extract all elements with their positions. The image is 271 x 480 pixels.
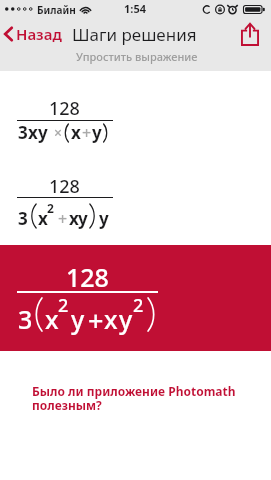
staticText: 2	[133, 293, 144, 318]
staticText: x	[69, 207, 79, 230]
staticText: x	[38, 207, 48, 230]
staticText: 3	[18, 207, 28, 230]
staticText: y	[78, 207, 88, 230]
staticText: 3	[18, 121, 28, 144]
staticText: Упростить выражение	[76, 49, 198, 64]
staticText: ×	[54, 123, 63, 142]
staticText: 2	[58, 293, 69, 318]
staticText: 3	[18, 302, 33, 336]
staticText: Было ли приложение Photomath	[32, 383, 236, 399]
staticText: 1:54	[124, 1, 146, 16]
staticText: +	[88, 302, 104, 339]
staticText: полезным?	[32, 397, 102, 413]
staticText: x	[104, 302, 118, 336]
staticText: Шаги решения	[72, 23, 197, 46]
staticText: Назад	[16, 24, 62, 44]
staticText: 128	[49, 174, 80, 199]
button[interactable]: Share	[236, 20, 264, 48]
button[interactable]: Назад	[3, 20, 62, 48]
staticText: y	[38, 121, 48, 144]
staticText: x	[71, 121, 81, 144]
staticText: 128	[49, 96, 80, 121]
button[interactable]	[0, 245, 271, 351]
staticText: 2	[47, 200, 54, 216]
staticText: x	[28, 121, 38, 144]
staticText: 128	[66, 260, 109, 294]
staticText: x	[45, 302, 59, 336]
staticText: Билайн	[37, 3, 76, 17]
staticText: +	[58, 208, 68, 230]
staticText: y	[71, 302, 85, 336]
staticText: +	[82, 122, 92, 144]
staticText: y	[119, 302, 133, 336]
staticText: y	[92, 121, 102, 144]
staticText: y	[99, 207, 109, 230]
